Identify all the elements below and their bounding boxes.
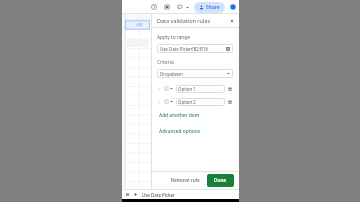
button[interactable]: Present: [163, 3, 171, 11]
button[interactable]: Option 1: [176, 85, 225, 93]
button[interactable]: Advanced options: [157, 127, 203, 136]
staticText: Criteria: [157, 59, 174, 66]
staticText: Add another item: [159, 112, 200, 119]
button[interactable]: Done: [207, 174, 234, 187]
button[interactable]: Add another item: [157, 111, 202, 120]
button[interactable]: Choose colour: [163, 98, 174, 105]
button[interactable]: Reorder: [157, 97, 233, 106]
staticText: Remove rule: [171, 177, 200, 184]
button[interactable]: Add sheet: [133, 192, 138, 197]
button[interactable]: Choose colour: [163, 85, 174, 92]
other: Reorder: [157, 100, 161, 104]
button[interactable]: Delete item: [227, 86, 233, 92]
button[interactable]: History: [150, 3, 158, 11]
button[interactable]: Comment: [176, 3, 184, 11]
button[interactable]: Share: [194, 2, 225, 13]
staticText: Use Date Picker: [142, 192, 175, 198]
button[interactable]: Dropdown: [157, 69, 233, 78]
staticText: Option 2: [178, 99, 196, 105]
staticText: Share: [206, 4, 220, 11]
button[interactable]: All sheets: [125, 192, 130, 197]
other: Reorder: [157, 87, 161, 91]
staticText: Option 1: [178, 86, 196, 92]
button[interactable]: Account: [229, 3, 237, 11]
staticText: Use Date Picker!B2:B16: [160, 46, 208, 52]
staticText: Advanced options: [159, 128, 201, 135]
staticText: Data validation rules: [157, 17, 211, 24]
button[interactable]: Option 2: [176, 98, 225, 106]
staticText: Apply to range: [157, 34, 190, 41]
staticText: Dropdown: [160, 71, 183, 77]
staticText: Done: [214, 177, 227, 184]
button[interactable]: Use Date Picker!B2:B16: [157, 44, 233, 53]
button[interactable]: Remove rule: [168, 175, 203, 186]
button[interactable]: Reorder: [157, 84, 233, 93]
button[interactable]: Close: [228, 17, 235, 24]
button[interactable]: Delete item: [227, 99, 233, 105]
